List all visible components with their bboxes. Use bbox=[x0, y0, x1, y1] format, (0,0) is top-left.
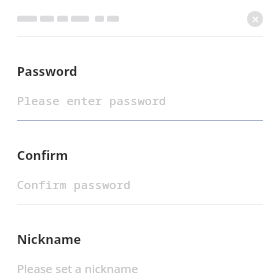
staticText: Please enter password bbox=[17, 93, 167, 109]
button[interactable]: Nickname bbox=[17, 231, 263, 280]
staticText: Confirm password bbox=[17, 177, 131, 193]
button[interactable]: Clear email bbox=[247, 11, 263, 27]
button[interactable]: Confirm bbox=[17, 147, 263, 205]
staticText: Confirm bbox=[17, 147, 69, 164]
button[interactable]: Clear email bbox=[17, 11, 263, 27]
staticText: Nickname bbox=[17, 231, 82, 248]
staticText: Please set a nickname bbox=[17, 261, 139, 277]
staticText: Password bbox=[17, 63, 78, 80]
button[interactable]: Password bbox=[17, 63, 263, 121]
